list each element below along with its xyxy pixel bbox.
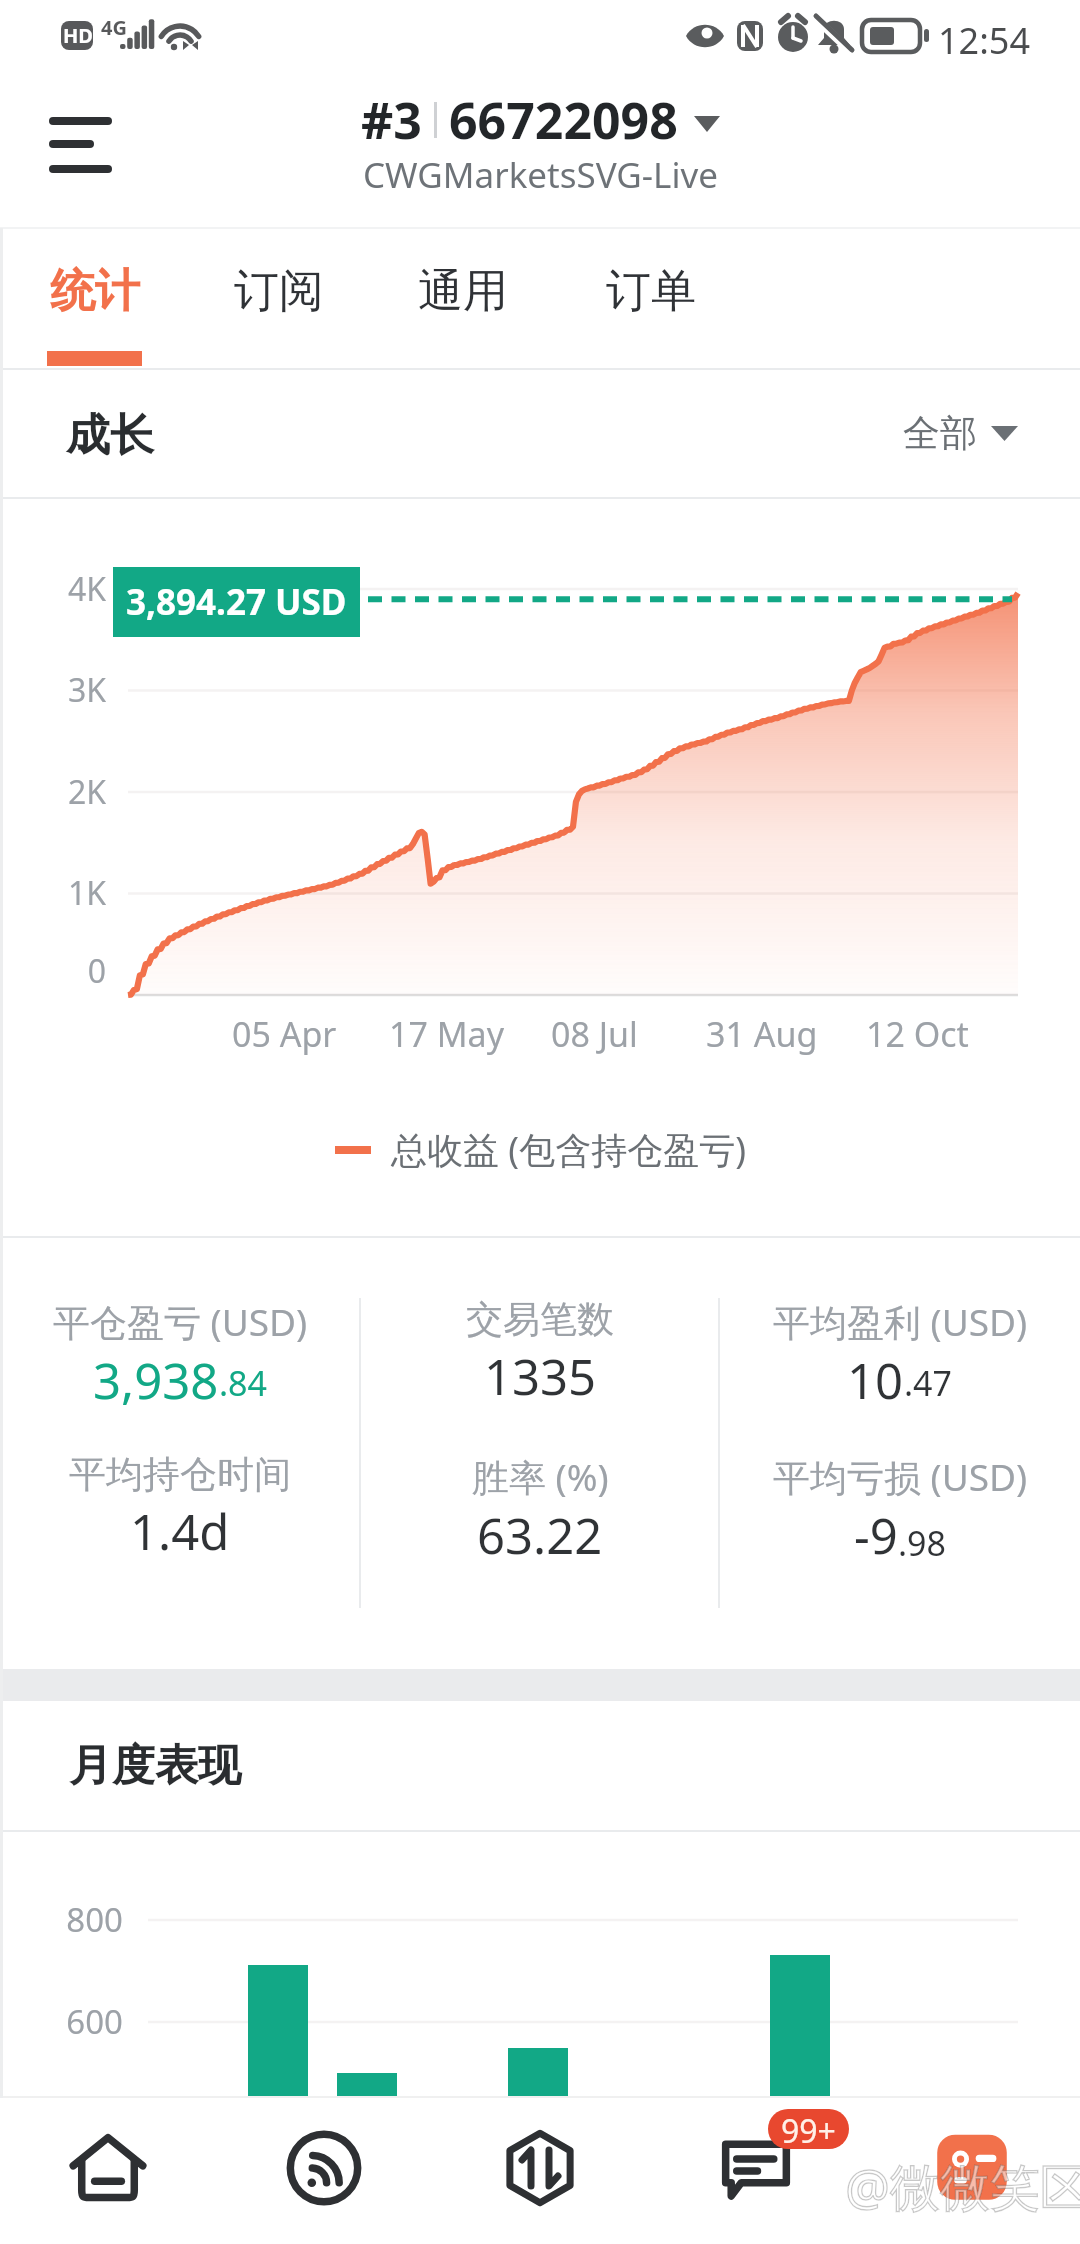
button[interactable]: 统计	[47, 228, 142, 368]
staticText: 全部	[903, 410, 977, 457]
button[interactable]: 交易笔数	[360, 1239, 720, 1409]
staticText: 交易笔数	[466, 1296, 614, 1343]
staticText: 17 May	[389, 1011, 504, 1057]
button[interactable]: 平均亏损 (USD)	[720, 1409, 1080, 1609]
staticText: .98	[898, 1520, 947, 1566]
button[interactable]: Trade	[432, 2098, 648, 2244]
staticText: #3	[361, 86, 422, 154]
staticText: 3,938	[93, 1347, 219, 1409]
staticText: 月度表现	[69, 1739, 241, 1793]
button[interactable]: More	[864, 2098, 1080, 2244]
button[interactable]: 平均持仓时间	[0, 1409, 360, 1609]
staticText: -9	[854, 1502, 898, 1569]
staticText: 05 Apr	[232, 1011, 337, 1057]
button[interactable]: Messages	[648, 2098, 864, 2244]
staticText: CWGMarketsSVG-Live	[363, 151, 718, 199]
staticText: 平仓盈亏 (USD)	[53, 1296, 308, 1347]
button[interactable]: #3	[353, 80, 728, 160]
staticText: 63.22	[477, 1502, 603, 1569]
button[interactable]: 全部	[903, 396, 1018, 471]
staticText: 1K	[25, 871, 106, 915]
button[interactable]: Menu	[30, 94, 126, 208]
staticText: 12:54	[938, 16, 1031, 65]
staticText: .47	[904, 1360, 953, 1406]
staticText: 统计	[50, 263, 140, 320]
staticText: 800	[32, 1897, 123, 1942]
staticText: @微微笑区	[845, 2152, 1080, 2220]
button[interactable]: Home	[0, 2098, 216, 2244]
button[interactable]: 订阅	[231, 228, 326, 368]
staticText: 12 Oct	[866, 1011, 969, 1057]
staticText: 08 Jul	[551, 1011, 638, 1057]
staticText: 成长	[66, 408, 154, 463]
staticText: 平均盈利 (USD)	[773, 1296, 1028, 1347]
staticText: 订阅	[234, 263, 324, 320]
staticText: 订单	[606, 263, 696, 320]
staticText: 600	[32, 1999, 123, 2044]
staticText: 10	[847, 1347, 904, 1409]
staticText: 66722098	[449, 86, 678, 154]
staticText: 通用	[418, 263, 508, 320]
staticText: @微微笑区	[845, 2152, 1080, 2220]
button[interactable]: 平均盈利 (USD)	[720, 1239, 1080, 1409]
staticText: 0	[25, 949, 106, 993]
staticText: 平均持仓时间	[69, 1451, 291, 1498]
button[interactable]: 胜率 (%)	[360, 1409, 720, 1609]
button[interactable]: 平仓盈亏 (USD)	[0, 1239, 360, 1409]
staticText: 4G	[101, 14, 127, 41]
staticText: 总收益 (包含持仓盈亏)	[391, 1125, 746, 1174]
button[interactable]: Feed	[216, 2098, 432, 2244]
staticText: HD	[63, 22, 93, 49]
staticText: 3,894.27 USD	[126, 578, 347, 626]
staticText: 1335	[484, 1343, 597, 1409]
staticText: .84	[219, 1360, 268, 1406]
staticText: 1.4d	[130, 1498, 230, 1565]
staticText: 31 Aug	[706, 1011, 818, 1057]
staticText: 4K	[25, 567, 106, 611]
staticText: 3K	[25, 668, 106, 712]
button[interactable]: 订单	[603, 228, 698, 368]
staticText: 胜率 (%)	[472, 1451, 609, 1502]
staticText: 平均亏损 (USD)	[773, 1451, 1028, 1502]
button[interactable]: 通用	[415, 228, 510, 368]
staticText: 2K	[25, 770, 106, 814]
staticText: 99+	[781, 2109, 836, 2149]
